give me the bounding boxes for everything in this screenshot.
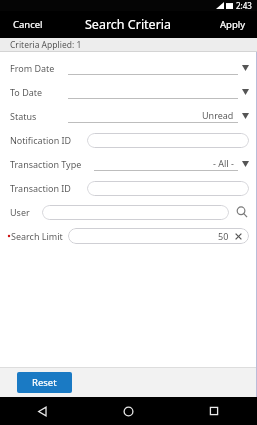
button[interactable]: Notification ID [0,128,257,152]
button[interactable]: From Date [0,56,257,80]
staticText: - All - [213,157,234,169]
button[interactable]: Reset [17,372,72,393]
button[interactable]: Status [0,104,257,128]
button[interactable]: Transaction Type [0,152,257,176]
button[interactable]: Transaction ID [0,176,257,200]
staticText: From Date [10,62,68,74]
button[interactable]: Search user [235,205,249,219]
button[interactable]: Apply [209,11,257,38]
staticText: 50 [218,230,229,242]
staticText: To Date [10,86,68,98]
button[interactable]: Clear search limit [234,232,243,241]
button[interactable]: Back [0,397,85,425]
staticText: Apply [220,18,246,31]
staticText: Status [10,110,68,122]
button[interactable]: Recent apps [171,397,257,425]
staticText: Search Criteria [85,16,172,33]
button[interactable]: 50 [68,228,249,244]
staticText: Criteria Applied: 1 [10,39,82,51]
button[interactable]: Home [85,397,171,425]
staticText: Unread [202,109,234,121]
staticText: Transaction ID [10,182,83,194]
staticText: Reset [32,376,57,389]
staticText: Notification ID [10,134,83,146]
staticText: Transaction Type [10,158,94,170]
staticText: Search Limit [11,230,63,242]
button[interactable]: Cancel [0,11,56,38]
staticText: User [10,206,40,218]
staticText: Cancel [13,18,43,31]
button[interactable]: To Date [0,80,257,104]
button[interactable] [42,205,229,220]
staticText: 2:43 [236,0,252,11]
